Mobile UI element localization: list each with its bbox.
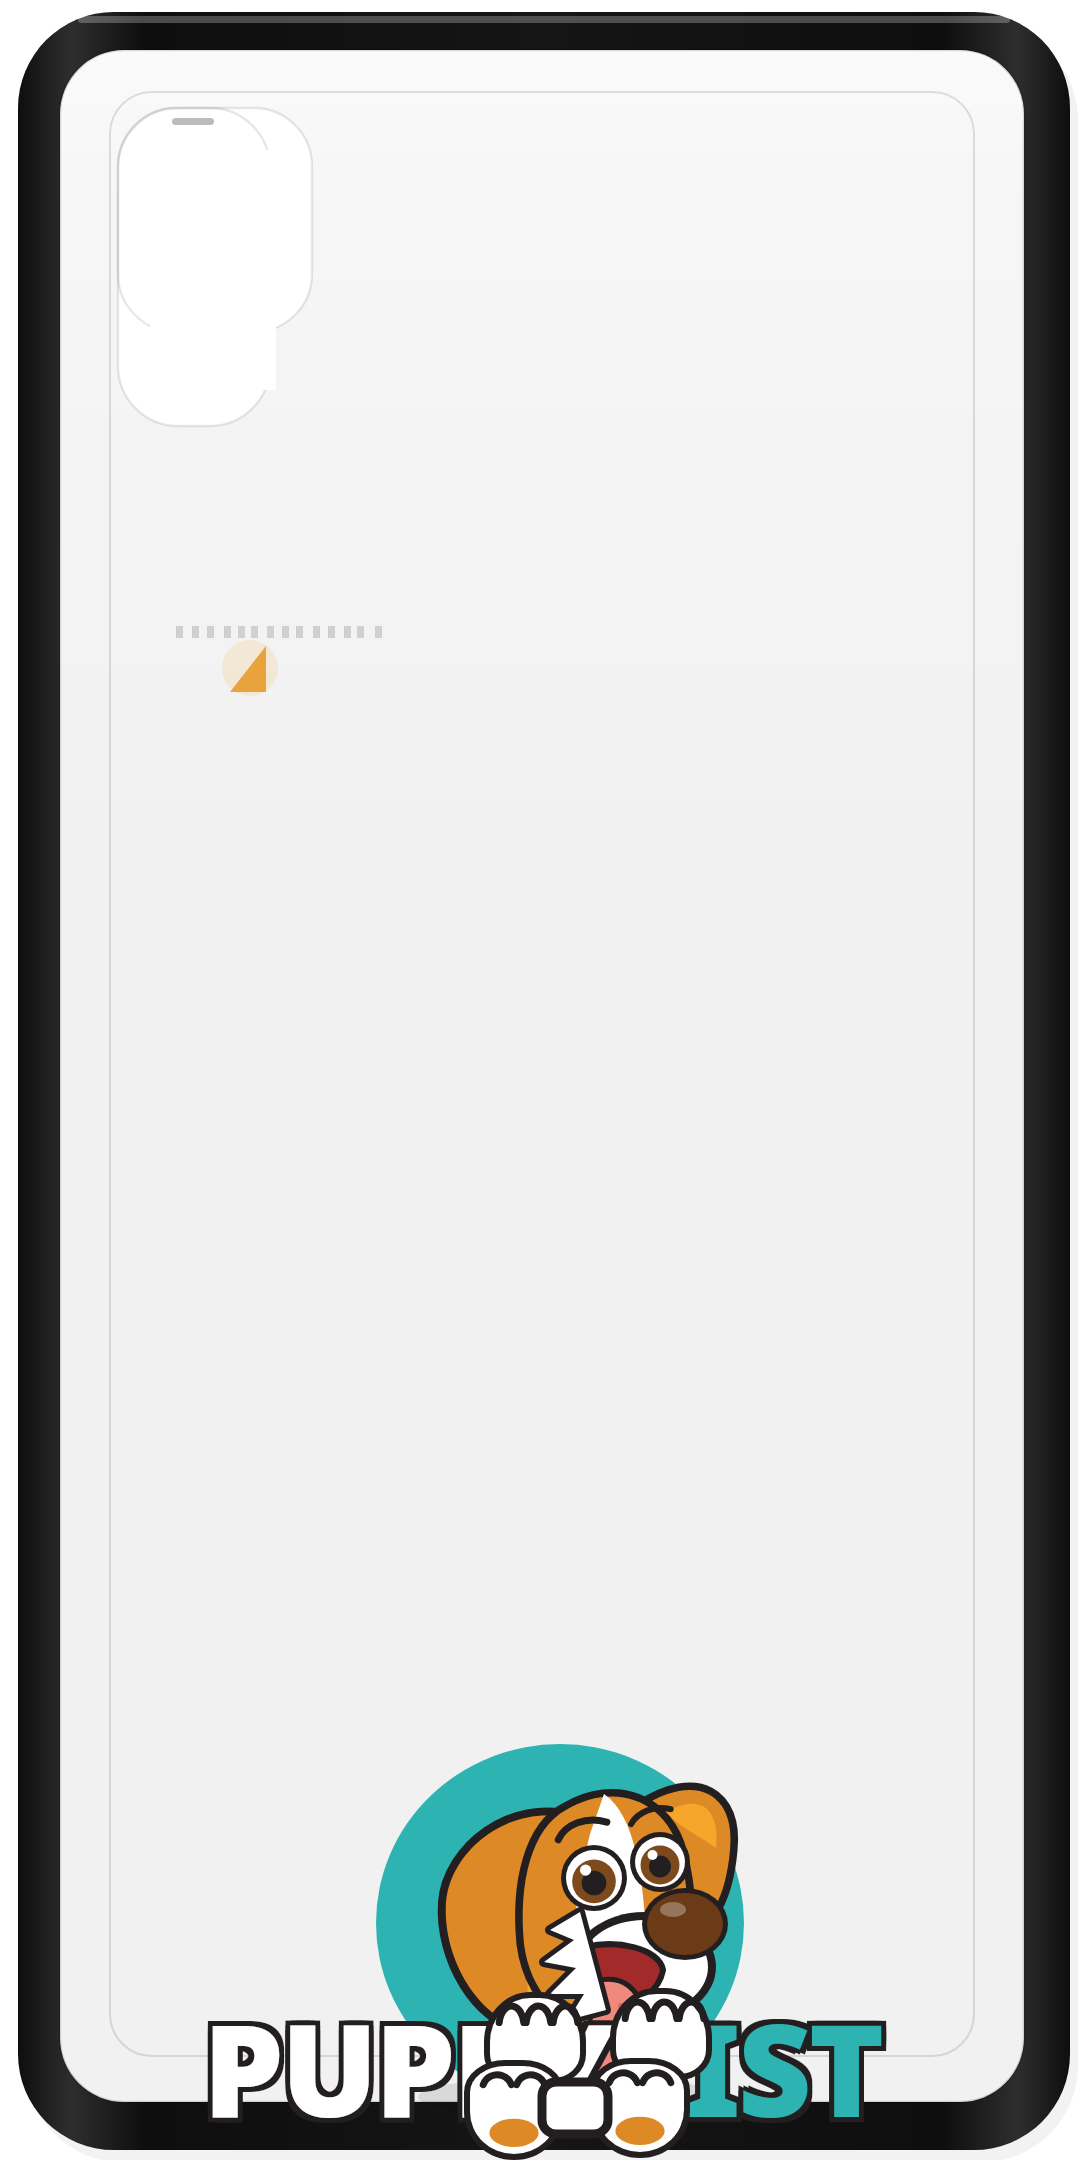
staticText: PUPPY	[198, 1975, 608, 2149]
staticText: PUPPY	[203, 1985, 613, 2159]
staticText: PUPPY	[203, 1975, 613, 2149]
staticText: LIST	[608, 1975, 877, 2149]
staticText: LIST	[608, 1980, 877, 2154]
staticText: LIST	[618, 1980, 887, 2154]
staticText: LIST	[618, 1975, 887, 2149]
staticText: PUPPY	[208, 1975, 618, 2149]
staticText: PUPPY	[198, 1980, 608, 2154]
staticText: PUPPY	[198, 1985, 608, 2159]
staticText: PUPPY	[208, 1980, 618, 2154]
staticText: LIST	[613, 1975, 882, 2149]
staticText: PUPPY	[203, 1980, 613, 2154]
staticText: LIST	[618, 1985, 887, 2159]
staticText: LIST	[613, 1980, 882, 2154]
staticText: PUPPY	[208, 1985, 618, 2159]
staticText: LIST	[613, 1985, 882, 2159]
staticText: LIST	[608, 1985, 877, 2159]
button[interactable]: PuppyList clear phone case	[0, 0, 1084, 2160]
